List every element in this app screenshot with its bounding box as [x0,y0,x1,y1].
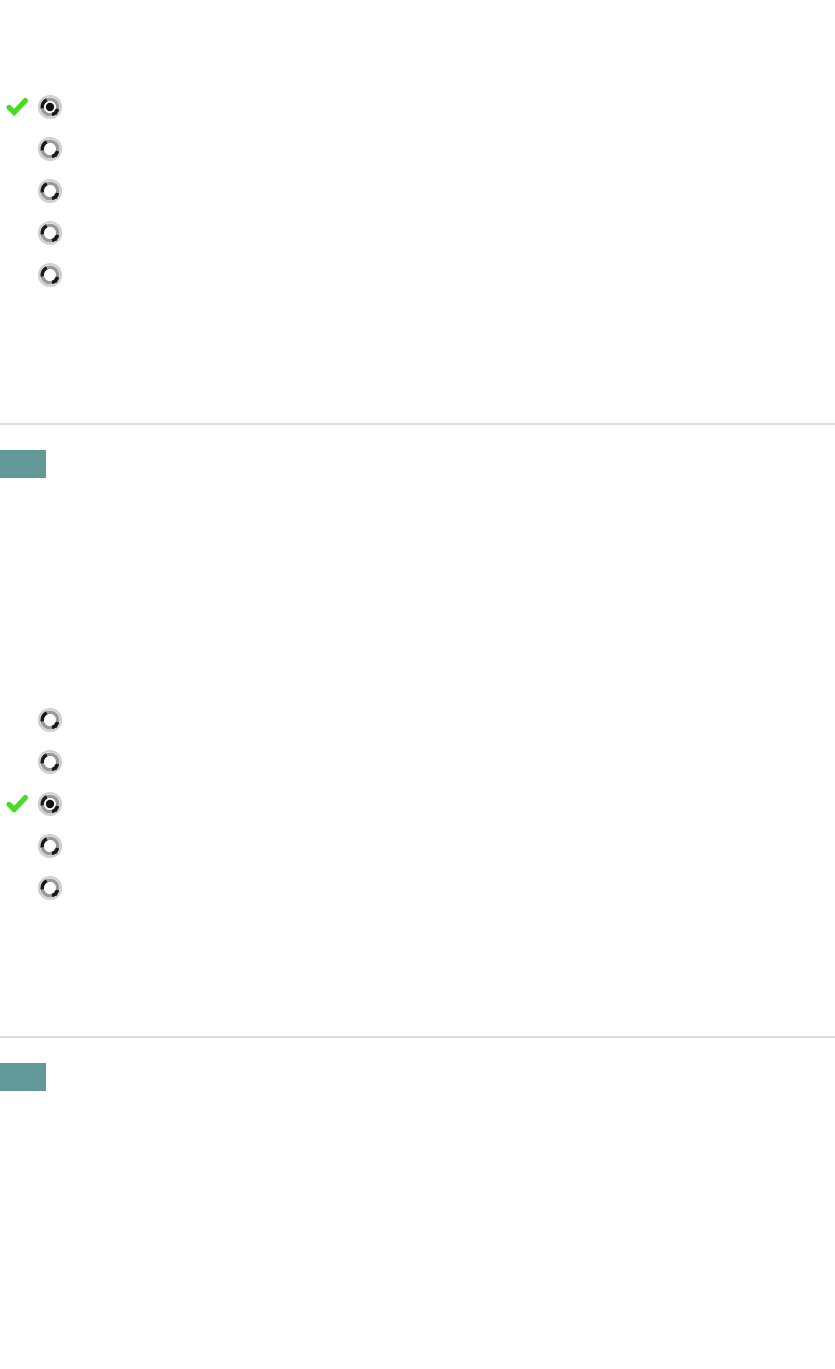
button[interactable]: Option 1 [0,699,835,741]
button[interactable]: Option 5 [0,867,835,909]
button[interactable]: Option 3 [0,783,835,825]
button[interactable]: Option 4 [0,825,835,867]
button[interactable]: Option 1 [0,86,835,128]
button[interactable]: Option 2 [0,741,835,783]
button[interactable]: Option 4 [0,212,835,254]
button[interactable]: Option 2 [0,128,835,170]
button[interactable]: Option 3 [0,170,835,212]
button[interactable]: Option 5 [0,254,835,296]
